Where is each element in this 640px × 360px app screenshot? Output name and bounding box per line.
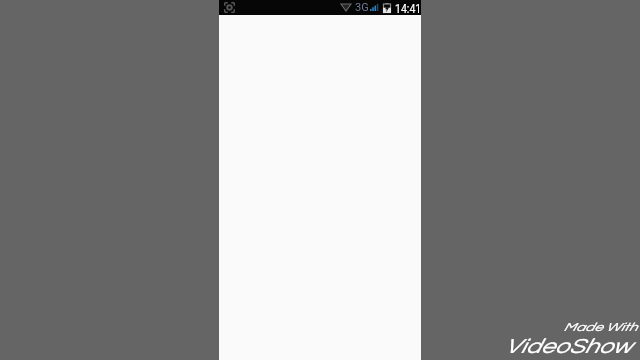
other: Wi-Fi <box>341 3 351 11</box>
staticText: 3G <box>355 1 369 14</box>
button[interactable]: Camera notification <box>224 2 235 13</box>
button[interactable]: App content <box>219 0 421 360</box>
staticText: 14:41 <box>395 2 421 16</box>
other: Mobile signal <box>370 4 379 11</box>
staticText: VideoShow <box>504 336 631 358</box>
staticText: Made With <box>563 321 637 333</box>
other: Battery charging <box>383 3 391 13</box>
